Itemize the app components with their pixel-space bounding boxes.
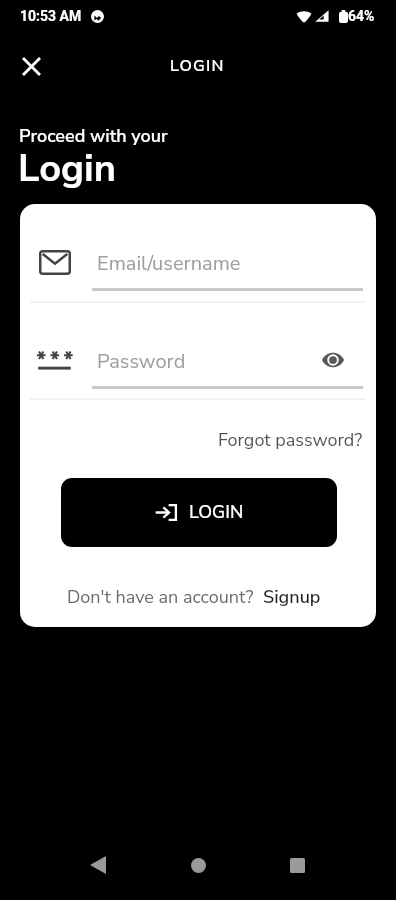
button[interactable]: Back [74,841,122,889]
staticText: Signup [263,585,321,607]
staticText: 64% [348,8,375,24]
button[interactable]: LOGIN [61,478,337,547]
staticText: LOGIN [189,500,244,525]
staticText: Email/username [97,250,241,276]
staticText: Forgot password? [218,428,363,452]
button[interactable]: Recents [273,841,321,889]
button[interactable]: Forgot password? [218,428,363,452]
staticText: 10:53 AM [20,8,82,24]
staticText: LOGIN [170,55,225,77]
button[interactable]: Show password [311,338,354,381]
button[interactable]: Close [10,45,52,87]
staticText: Don't have an account? [67,585,254,607]
button[interactable]: Signup [263,585,321,607]
button[interactable]: Email/username [97,250,241,276]
staticText: Login [18,143,116,195]
button[interactable]: Home [174,841,222,889]
button[interactable]: Password [97,348,186,374]
staticText: Proceed with your [19,124,168,149]
staticText: Password [97,348,186,374]
